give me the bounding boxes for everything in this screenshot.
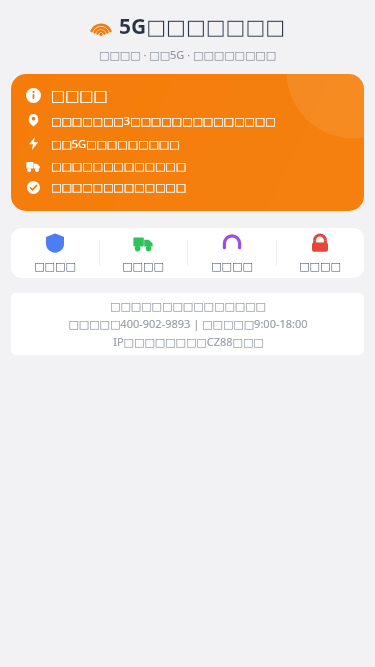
staticText: □□□□□400-902-9893 | □□□□□9:00-18:00 [68, 316, 308, 331]
staticText: □□□□□□□□□□□□□ [51, 160, 187, 173]
staticText: 5G□□□□□□□ [119, 12, 286, 41]
staticText: □□□□ [299, 260, 341, 273]
staticText: □□□□ · □□5G · □□□□□□□□ [99, 47, 277, 62]
button[interactable]: □□□□ [11, 74, 364, 211]
staticText: □□□□ [211, 260, 253, 273]
button[interactable]: Privacy [281, 229, 359, 277]
staticText: □□□□ [51, 87, 108, 104]
button[interactable]: Security [16, 229, 94, 277]
button[interactable]: Delivery [104, 229, 182, 277]
staticText: □□□□□□□3□□□□□□□□□□□□□□ [51, 113, 276, 128]
staticText: □□□□ [34, 260, 76, 273]
button[interactable]: Support [193, 229, 271, 277]
staticText: □□□□□□□□□□□□□□□ [110, 300, 266, 313]
staticText: □□5G□□□□□□□□□ [51, 136, 180, 151]
staticText: □□□□ [122, 260, 164, 273]
staticText: IP□□□□□□□□CZ88□□□ [113, 334, 264, 349]
staticText: □□□□□□□□□□□□□ [51, 181, 187, 194]
